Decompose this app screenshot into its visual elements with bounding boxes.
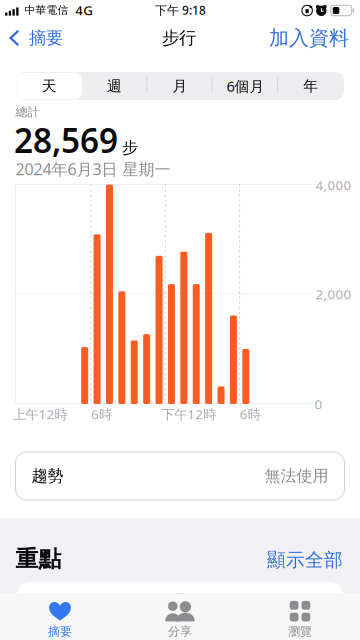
- staticText: 上午12時: [12, 405, 67, 423]
- staticText: 步: [122, 138, 138, 157]
- staticText: 週: [107, 77, 122, 95]
- button[interactable]: 分享: [120, 593, 240, 640]
- button[interactable]: 顯示全部: [261, 543, 349, 576]
- staticText: 0: [314, 395, 322, 413]
- staticText: 下午 9:18: [155, 2, 206, 18]
- staticText: 總計: [15, 105, 39, 119]
- button[interactable]: 6個月: [213, 73, 278, 99]
- staticText: 28,569: [14, 118, 118, 162]
- staticText: 中華電信: [24, 3, 68, 17]
- button[interactable]: 天: [16, 73, 82, 99]
- staticText: 年: [303, 77, 318, 95]
- staticText: 摘要: [48, 624, 72, 639]
- button[interactable]: 瀏覽: [240, 593, 360, 640]
- staticText: 分享: [168, 624, 192, 639]
- button[interactable]: 月: [147, 73, 213, 99]
- staticText: 瀏覽: [288, 624, 312, 639]
- staticText: 無法使用: [264, 466, 328, 486]
- button[interactable]: 趨勢: [15, 452, 344, 500]
- staticText: 趨勢: [31, 466, 63, 486]
- button[interactable]: 加入資料: [260, 20, 358, 56]
- button[interactable]: 摘要: [0, 593, 120, 640]
- staticText: 6個月: [226, 76, 264, 96]
- staticText: 2024年6月3日 星期一: [15, 158, 170, 180]
- staticText: 4,000: [315, 176, 351, 194]
- staticText: 6時: [91, 405, 112, 423]
- staticText: 下午12時: [161, 405, 216, 423]
- staticText: 步行: [162, 27, 196, 49]
- staticText: 6時: [240, 405, 261, 423]
- staticText: 重點: [15, 545, 61, 573]
- staticText: 4G: [75, 1, 93, 19]
- button[interactable]: 年: [278, 73, 343, 99]
- staticText: 2,000: [315, 285, 351, 303]
- staticText: 顯示全部: [267, 548, 343, 571]
- button[interactable]: 摘要: [2, 21, 70, 55]
- staticText: 月: [172, 77, 187, 95]
- staticText: 摘要: [29, 27, 63, 49]
- staticText: 加入資料: [269, 26, 349, 50]
- button[interactable]: 週: [82, 73, 147, 99]
- staticText: 天: [42, 77, 57, 95]
